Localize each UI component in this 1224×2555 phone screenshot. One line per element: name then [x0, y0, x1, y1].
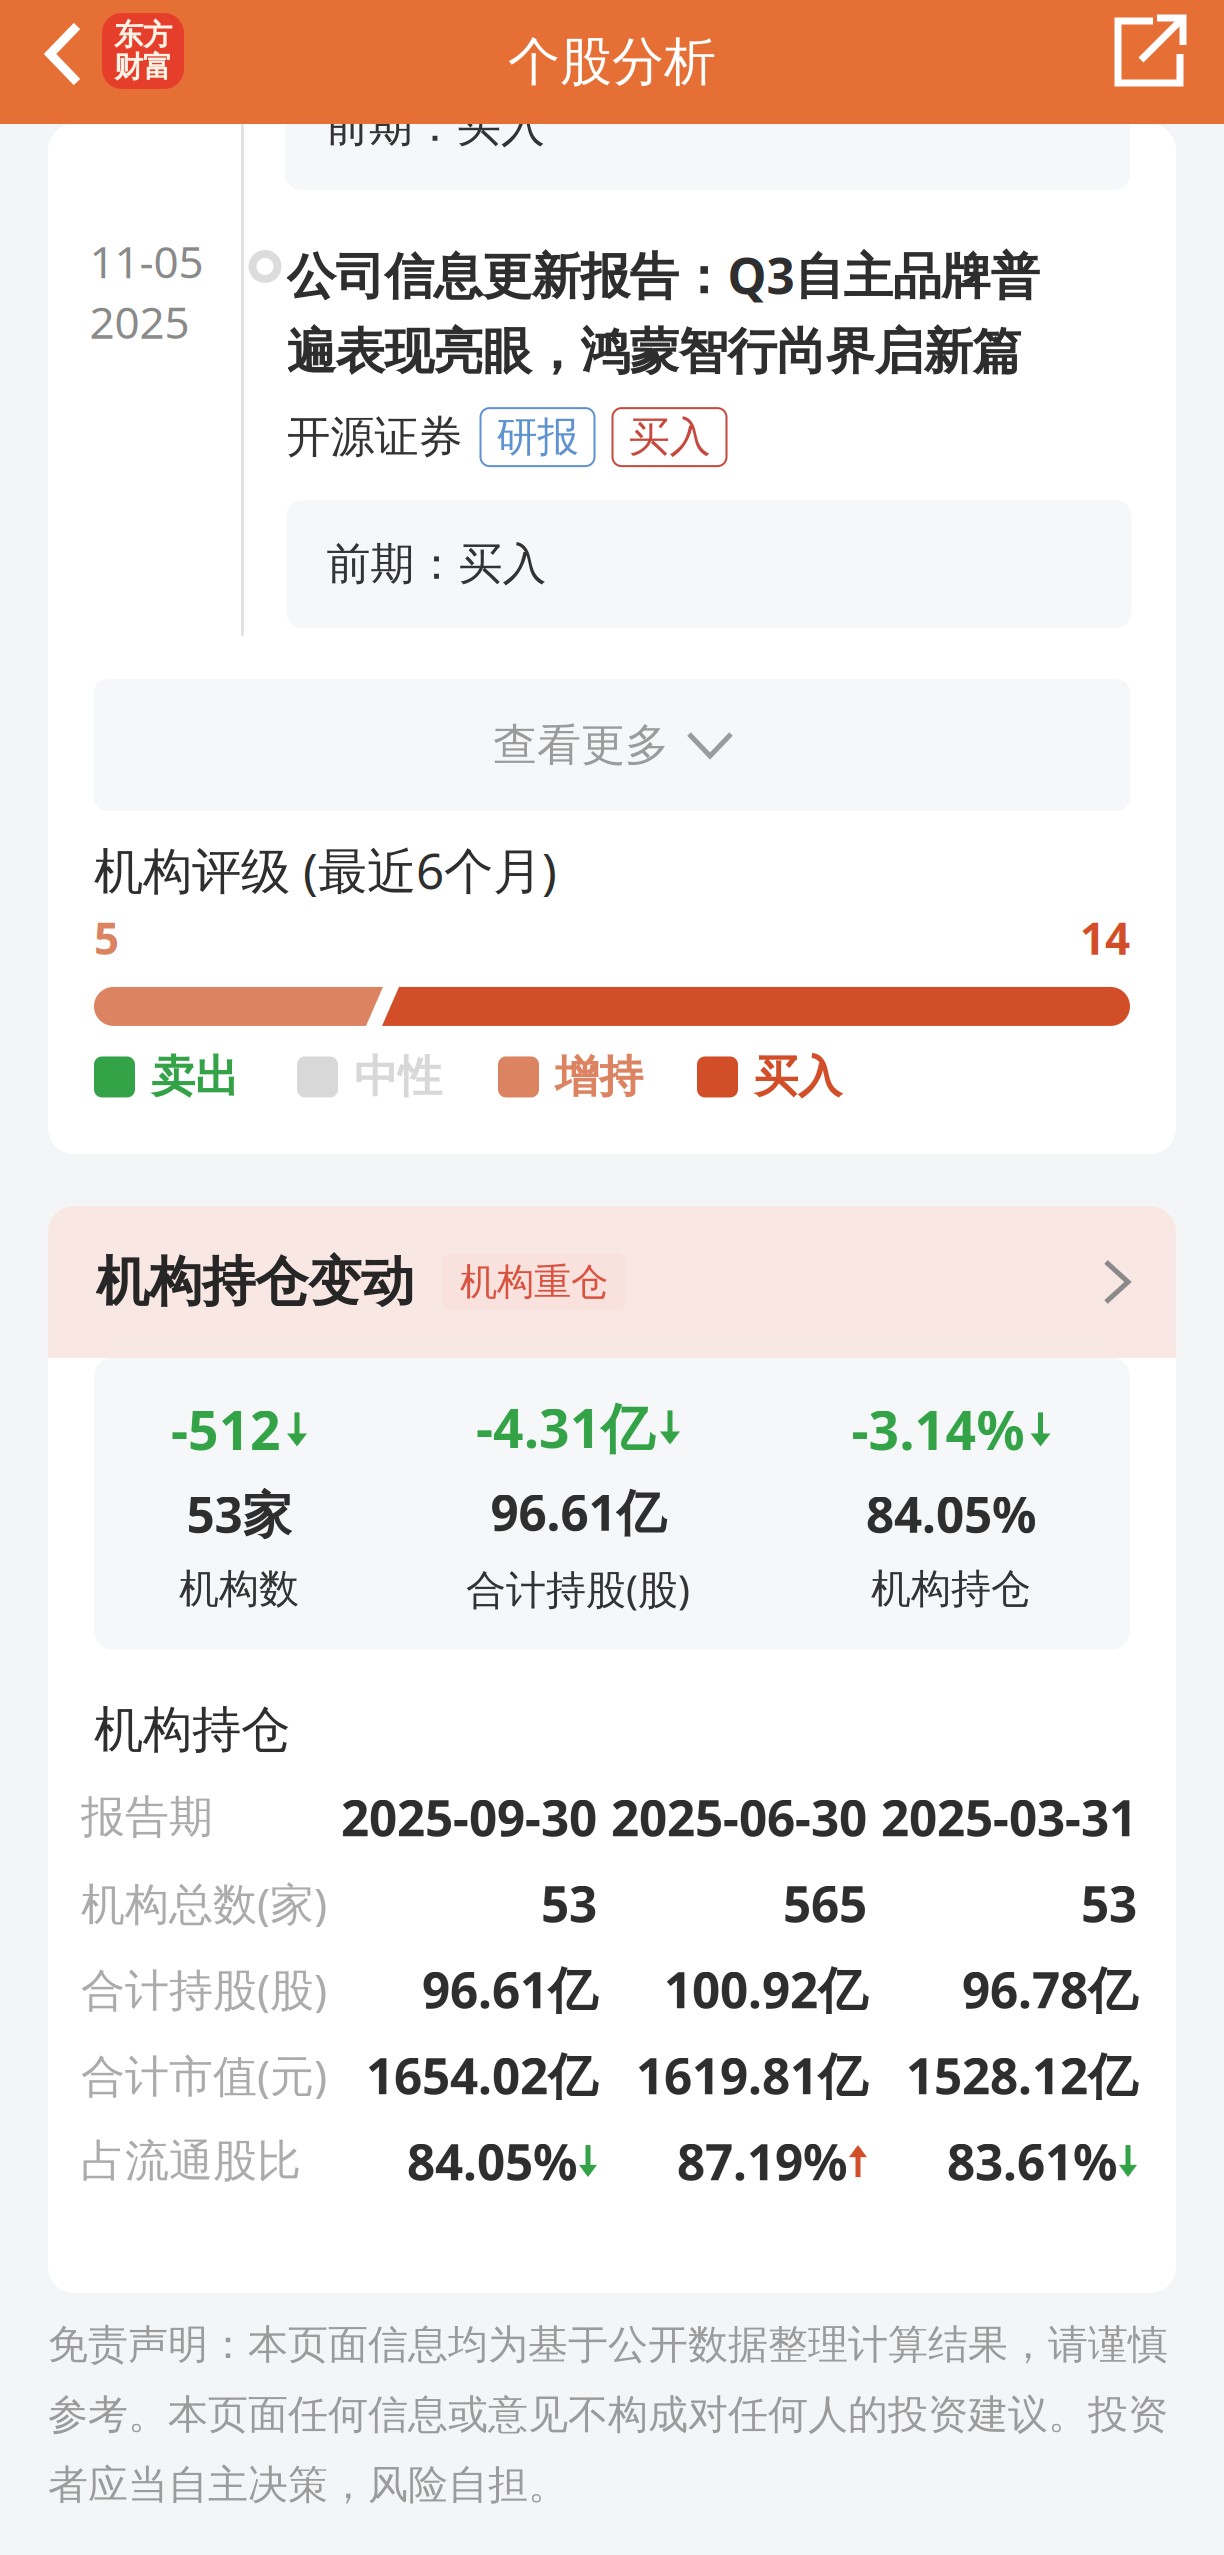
- staticText: 占流通股比: [81, 2134, 301, 2188]
- staticText: 中性: [354, 1050, 442, 1104]
- staticText: 机构数: [179, 1564, 299, 1613]
- staticText: 96.61亿: [490, 1479, 665, 1544]
- staticText: 增持: [555, 1050, 643, 1104]
- staticText: 53: [1081, 1870, 1137, 1936]
- staticText: 1654.02亿: [366, 2042, 597, 2108]
- staticText: 11-05: [89, 232, 203, 290]
- staticText: -3.14%: [851, 1394, 1024, 1465]
- staticText: 机构持仓: [94, 1699, 290, 1760]
- staticText: 2025-06-30: [611, 1784, 867, 1850]
- staticText: 96.61亿: [422, 1956, 597, 2022]
- staticText: 2025: [89, 292, 189, 351]
- staticText: 96.78亿: [962, 1956, 1137, 2022]
- staticText: 开源证券: [286, 410, 462, 464]
- staticText: 机构持仓: [871, 1564, 1031, 1613]
- staticText: 机构总数(家): [81, 1874, 327, 1932]
- staticText: 查看更多: [493, 718, 669, 772]
- button[interactable]: East Money: [102, 0, 184, 124]
- staticText: 合计市值(元): [81, 2046, 327, 2104]
- staticText: 个股分析: [508, 30, 716, 94]
- staticText: 买入: [754, 1050, 842, 1104]
- staticText: 合计持股(股): [466, 1562, 690, 1615]
- staticText: -4.31亿: [476, 1392, 654, 1463]
- staticText: 报告期: [81, 1790, 213, 1844]
- staticText: 83.61%: [947, 2128, 1117, 2194]
- button[interactable]: Back: [0, 0, 82, 124]
- button[interactable]: Share: [1098, 0, 1202, 124]
- staticText: 53家: [186, 1481, 291, 1546]
- staticText: 87.19%: [677, 2128, 847, 2194]
- staticText: 卖出: [151, 1050, 239, 1104]
- staticText: 2025-03-31: [881, 1784, 1137, 1850]
- staticText: 机构评级 (最近6个月): [94, 837, 557, 902]
- staticText: 参考。本页面任何信息或意见不构成对任何人的投资建议。投资: [48, 2390, 1168, 2439]
- staticText: 1528.12亿: [906, 2042, 1137, 2108]
- staticText: 14: [1080, 908, 1130, 967]
- staticText: 前期：买入: [325, 99, 545, 153]
- staticText: 1619.81亿: [636, 2042, 867, 2108]
- staticText: 遍表现亮眼，鸿蒙智行尚界启新篇: [286, 321, 1021, 382]
- staticText: 财富: [114, 49, 172, 85]
- staticText: 84.05%: [866, 1481, 1036, 1546]
- staticText: 前期：买入: [326, 537, 546, 591]
- staticText: 2025-09-30: [341, 1784, 597, 1850]
- staticText: -512: [171, 1394, 281, 1465]
- staticText: 买入: [628, 412, 710, 462]
- staticText: 合计持股(股): [81, 1960, 327, 2018]
- staticText: 100.92亿: [664, 1956, 867, 2022]
- staticText: 免责声明：本页面信息均为基于公开数据整理计算结果，请谨慎: [48, 2320, 1168, 2369]
- button[interactable]: 查看更多: [93, 679, 1130, 811]
- staticText: 5: [94, 908, 119, 967]
- staticText: 研报: [496, 412, 578, 462]
- staticText: 东方: [114, 17, 172, 53]
- staticText: 公司信息更新报告：Q3自主品牌普: [286, 242, 1039, 307]
- staticText: 565: [783, 1870, 867, 1936]
- staticText: 84.05%: [407, 2128, 577, 2194]
- staticText: 机构重仓: [460, 1259, 608, 1305]
- staticText: 者应当自主决策，风险自担。: [48, 2460, 568, 2509]
- staticText: 53: [541, 1870, 597, 1936]
- button[interactable]: 机构持仓变动: [48, 1206, 1176, 1358]
- staticText: 机构持仓变动: [96, 1249, 414, 1315]
